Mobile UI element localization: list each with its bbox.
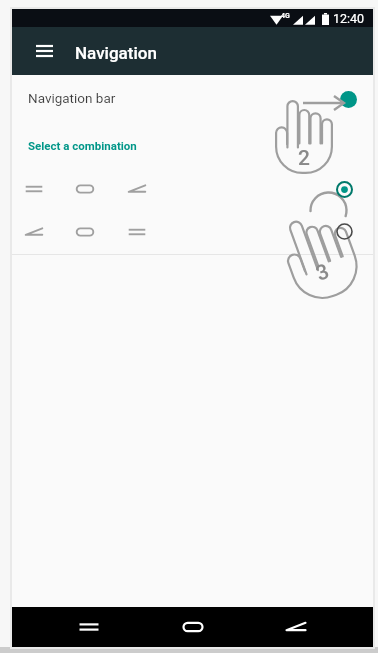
button[interactable]: [123, 178, 151, 200]
button[interactable]: [20, 221, 48, 243]
button[interactable]: Navigation bar toggle: [340, 91, 357, 108]
button[interactable]: Navigation bar: [12, 75, 373, 121]
button[interactable]: [71, 221, 99, 243]
staticText: Select a combination: [28, 139, 137, 152]
button[interactable]: Back: [275, 607, 317, 647]
staticText: Navigation: [75, 43, 157, 63]
staticText: 12:40: [333, 11, 365, 26]
button[interactable]: Recent apps: [68, 607, 110, 647]
staticText: 3: [313, 259, 333, 286]
button[interactable]: Select combination 2: [332, 219, 356, 243]
button[interactable]: Home: [172, 607, 214, 647]
staticText: Navigation bar: [28, 90, 116, 106]
button[interactable]: [20, 178, 48, 200]
button[interactable]: [71, 178, 99, 200]
staticText: 2: [298, 146, 310, 171]
button[interactable]: [123, 221, 151, 243]
button[interactable]: Open navigation menu: [24, 31, 64, 71]
staticText: 4G: [281, 12, 290, 20]
button[interactable]: Select combination 1: [332, 177, 356, 201]
